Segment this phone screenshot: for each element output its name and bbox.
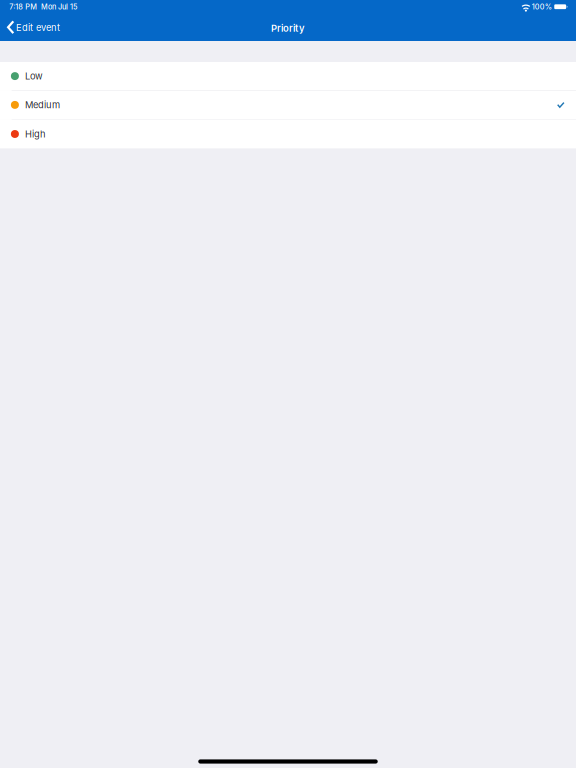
button[interactable]: Medium	[0, 91, 576, 120]
staticText: High	[25, 128, 46, 140]
staticText: Edit event	[16, 22, 60, 33]
button[interactable]: High	[0, 120, 576, 148]
button[interactable]: Edit event	[0, 13, 68, 41]
staticText: Low	[25, 70, 43, 82]
staticText: 100%	[532, 2, 552, 11]
staticText: Mon Jul 15	[41, 2, 78, 11]
staticText: Priority	[271, 23, 305, 34]
staticText: 7:18 PM	[9, 2, 37, 11]
button[interactable]: Low	[0, 62, 576, 91]
staticText: Medium	[25, 99, 60, 111]
